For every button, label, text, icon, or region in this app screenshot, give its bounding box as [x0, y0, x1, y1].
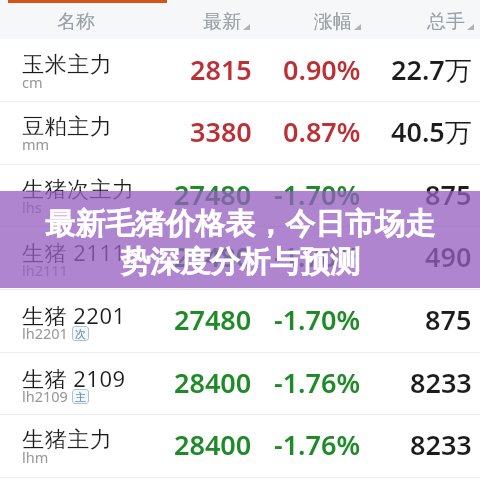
staticText: -1.76% [274, 364, 361, 401]
staticText: 生猪 2201 [22, 300, 126, 330]
button[interactable]: 名称 [57, 10, 95, 34]
button[interactable]: 最新毛猪价格表，今日市场走 势深度分析与预测 [0, 191, 480, 288]
staticText: 主 [75, 390, 86, 404]
staticText: cm [22, 72, 43, 92]
button[interactable]: 总手 [427, 10, 474, 34]
staticText: lh2111 [22, 260, 68, 280]
staticText: 27480 [174, 176, 252, 213]
button[interactable]: 生猪 2111 [0, 227, 480, 290]
staticText: -1.76% [274, 426, 361, 463]
staticText: 875 [425, 176, 472, 213]
staticText: 28400 [174, 364, 252, 401]
button[interactable]: 生猪主力 [0, 415, 480, 478]
button[interactable]: 涨幅 [314, 10, 361, 34]
staticText: 最新毛猪价格表，今日市场走 势深度分析与预测 [0, 205, 480, 281]
staticText: 8233 [410, 364, 472, 401]
staticText: 27480 [174, 301, 252, 338]
staticText: 0.87% [283, 113, 361, 150]
button[interactable]: 生猪 2109 [0, 353, 480, 416]
staticText: 生猪 2111 [22, 237, 126, 267]
staticText: 0.90% [283, 51, 361, 88]
staticText: 22.7万 [391, 51, 472, 88]
staticText: lh2109 [22, 386, 68, 406]
staticText: 28400 [174, 426, 252, 463]
staticText: -1.70% [274, 176, 361, 213]
staticText: 875 [425, 301, 472, 338]
button[interactable]: 豆粕主力 [0, 102, 480, 165]
staticText: 3380 [190, 113, 252, 150]
staticText: lhs [22, 197, 42, 217]
staticText: 40.5万 [391, 113, 472, 150]
staticText: 生猪次主力 [22, 176, 135, 204]
staticText: 490 [425, 238, 472, 275]
button[interactable]: 玉米主力 [0, 40, 480, 103]
staticText: 生猪 2109 [22, 363, 126, 393]
staticText: 生猪主力 [22, 426, 112, 454]
button[interactable]: 最新 [203, 10, 250, 34]
staticText: 豆粕主力 [22, 113, 112, 141]
staticText: 27480 [174, 238, 252, 275]
staticText: 玉米主力 [22, 51, 112, 79]
staticText: 名称 [57, 10, 95, 34]
staticText: 2815 [190, 51, 252, 88]
staticText: lh2201 [22, 323, 68, 343]
staticText: 总手 [427, 10, 465, 34]
staticText: 次 [75, 327, 86, 341]
button[interactable]: 生猪 2201 [0, 290, 480, 353]
button[interactable]: 生猪次主力 [0, 165, 480, 228]
staticText: 最新 [203, 10, 241, 34]
staticText: 8233 [410, 426, 472, 463]
staticText: -1.70% [274, 301, 361, 338]
staticText: lhm [22, 447, 49, 467]
staticText: -1.70% [274, 238, 361, 275]
staticText: 涨幅 [314, 10, 352, 34]
staticText: mm [22, 134, 50, 154]
